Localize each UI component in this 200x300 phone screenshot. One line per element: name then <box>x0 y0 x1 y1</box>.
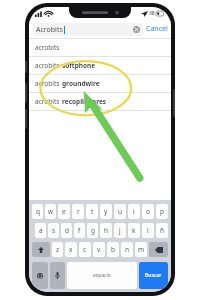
button[interactable]: u <box>114 204 126 219</box>
staticText: h <box>104 226 109 235</box>
staticText: w <box>48 207 54 216</box>
staticText: acrobits <box>35 97 62 106</box>
button[interactable]: Key <box>32 242 50 257</box>
button[interactable]: t <box>86 204 98 219</box>
staticText: 38 <box>149 10 155 17</box>
staticText: x <box>69 245 73 254</box>
button[interactable]: Acrobits <box>33 23 143 36</box>
button[interactable]: Buscar <box>139 262 168 289</box>
staticText: o <box>146 207 150 216</box>
staticText: b <box>111 245 115 254</box>
button[interactable]: l <box>142 223 154 238</box>
button[interactable]: d <box>61 223 72 238</box>
button[interactable]: b <box>107 242 119 257</box>
staticText: d <box>65 226 69 235</box>
staticText: t <box>91 207 94 216</box>
staticText: v <box>97 245 101 254</box>
button[interactable]: r <box>72 204 84 219</box>
button[interactable]: acrobits <box>29 39 171 56</box>
staticText: m <box>138 245 145 254</box>
staticText: groundwire <box>62 79 100 88</box>
staticText: acrobits <box>35 61 62 70</box>
button[interactable]: x <box>65 242 77 257</box>
staticText: Buscar <box>145 272 162 279</box>
staticText: acrobits <box>35 43 60 52</box>
button[interactable]: q <box>32 204 43 219</box>
button[interactable]: ñ <box>156 223 168 238</box>
button[interactable]: g <box>87 223 98 238</box>
button[interactable]: p <box>156 204 168 219</box>
staticText: acrobits <box>35 79 62 88</box>
staticText: i <box>133 207 135 216</box>
staticText: a <box>39 226 43 235</box>
button[interactable]: k <box>128 223 140 238</box>
staticText: Cancel <box>146 24 168 34</box>
button[interactable]: acrobits <box>29 75 171 92</box>
button[interactable]: Cancel <box>146 24 168 34</box>
staticText: g <box>91 226 95 235</box>
staticText: f <box>78 226 81 235</box>
button[interactable]: j <box>114 223 126 238</box>
button[interactable]: Key <box>32 262 48 289</box>
button[interactable]: e <box>58 204 70 219</box>
button[interactable]: z <box>52 242 63 257</box>
staticText: j <box>119 226 121 235</box>
staticText: k <box>132 226 136 235</box>
button[interactable]: Key <box>50 262 65 289</box>
button[interactable]: s <box>48 223 59 238</box>
staticText: softphone <box>62 61 96 70</box>
button[interactable]: v <box>93 242 105 257</box>
button[interactable]: i <box>128 204 140 219</box>
staticText: ñ <box>160 226 165 235</box>
staticText: r <box>77 207 80 216</box>
button[interactable]: a <box>35 223 46 238</box>
button[interactable]: n <box>121 242 133 257</box>
button[interactable]: m <box>135 242 147 257</box>
button[interactable]: h <box>100 223 112 238</box>
staticText: z <box>56 245 60 254</box>
staticText: p <box>160 207 164 216</box>
button[interactable]: w <box>45 204 56 219</box>
staticText: e <box>62 207 66 216</box>
button[interactable]: o <box>142 204 154 219</box>
staticText: Acrobits <box>36 25 63 35</box>
staticText: q <box>36 207 40 216</box>
staticText: c <box>83 245 87 254</box>
staticText: y <box>104 207 108 216</box>
button[interactable]: acrobits <box>29 93 171 110</box>
staticText: n <box>125 245 130 254</box>
button[interactable]: espacio <box>67 262 137 289</box>
staticText: u <box>118 207 123 216</box>
staticText: recopiladores <box>62 97 107 106</box>
staticText: s <box>52 226 56 235</box>
staticText: l <box>147 226 149 235</box>
button[interactable]: f <box>74 223 85 238</box>
button[interactable]: Key <box>149 242 168 257</box>
button[interactable]: acrobits <box>29 57 171 74</box>
staticText: espacio <box>93 272 111 279</box>
button[interactable]: Clear text <box>133 26 140 33</box>
button[interactable]: y <box>100 204 112 219</box>
button[interactable]: c <box>79 242 91 257</box>
